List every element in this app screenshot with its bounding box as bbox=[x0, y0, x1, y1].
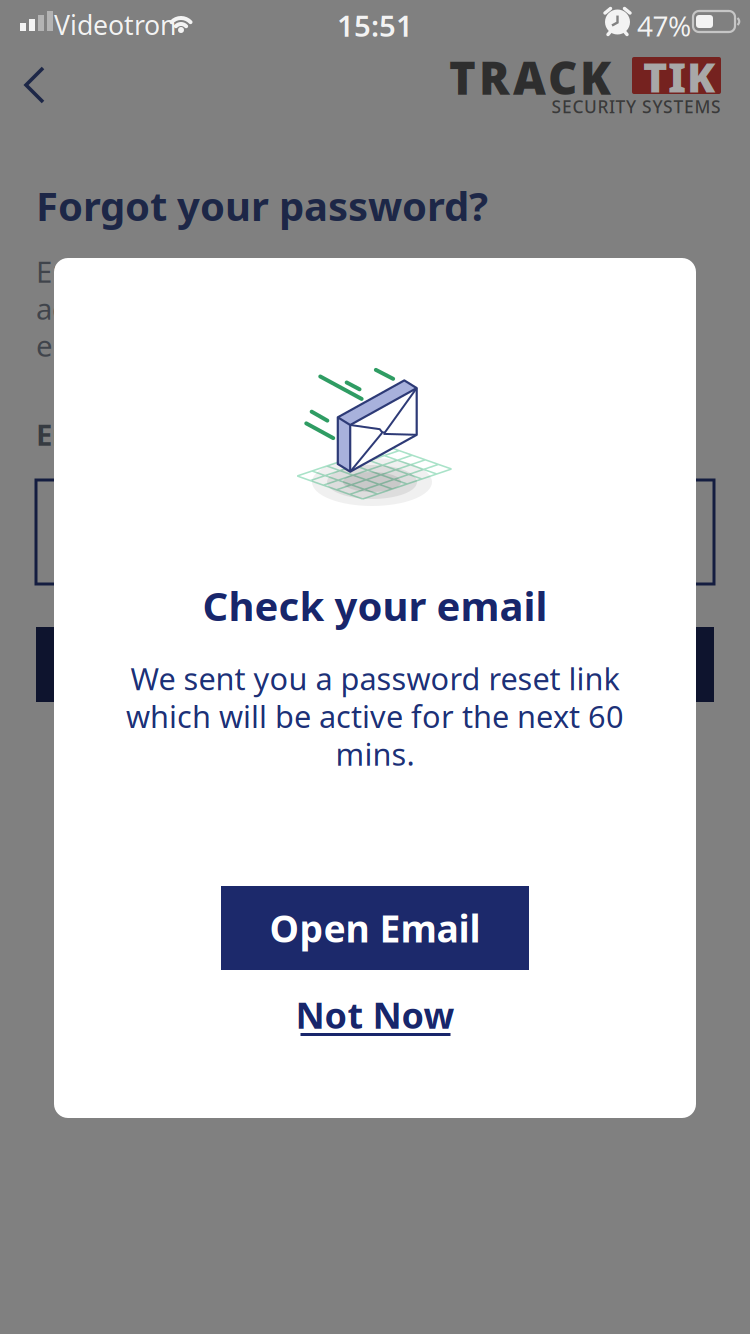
button[interactable]: Send instructions bbox=[36, 627, 714, 702]
staticText: email with instructions to reset your bbox=[36, 326, 539, 365]
button[interactable]: Open Email bbox=[221, 886, 529, 970]
staticText: Check your email bbox=[202, 579, 547, 632]
button[interactable]: Not Now bbox=[295, 991, 454, 1039]
staticText: Forgot your password? bbox=[36, 179, 488, 232]
staticText: Enter the email associated with your bbox=[36, 252, 541, 291]
button[interactable]: Email bbox=[36, 480, 714, 584]
staticText: which will be active for the next 60 bbox=[126, 696, 624, 736]
button[interactable]: Back bbox=[0, 0, 70, 130]
staticText: TRACK bbox=[449, 47, 611, 107]
staticText: 47% bbox=[637, 7, 691, 44]
staticText: Open Email bbox=[269, 903, 480, 953]
staticText: account and we will send you an bbox=[36, 289, 484, 328]
staticText: Not Now bbox=[295, 991, 454, 1039]
staticText: We sent you a password reset link bbox=[130, 658, 619, 699]
staticText: Email bbox=[36, 415, 117, 454]
staticText: Videotron bbox=[54, 7, 176, 42]
staticText: mins. bbox=[335, 733, 414, 774]
staticText: SECURITY SYSTEMS bbox=[551, 95, 721, 118]
staticText: TIK bbox=[643, 49, 715, 104]
staticText: 15:51 bbox=[337, 6, 413, 45]
